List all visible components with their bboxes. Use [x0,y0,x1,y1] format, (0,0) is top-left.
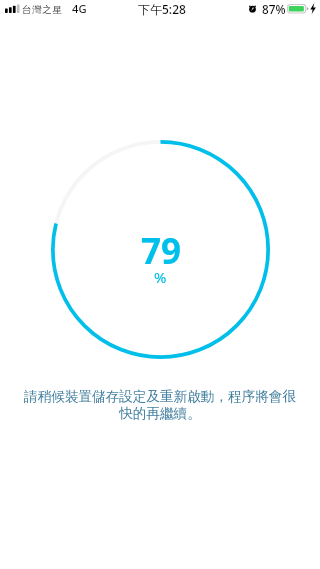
staticText: 4G [72,1,87,16]
staticText: % [154,267,167,287]
staticText: 79 [141,227,182,275]
staticText: 87% [262,1,286,17]
staticText: 下午5:28 [138,1,186,17]
staticText: 台灣之星 [22,4,63,16]
staticText: 請稍候裝置儲存設定及重新啟動，程序將會很快的再繼續。 [21,388,299,422]
